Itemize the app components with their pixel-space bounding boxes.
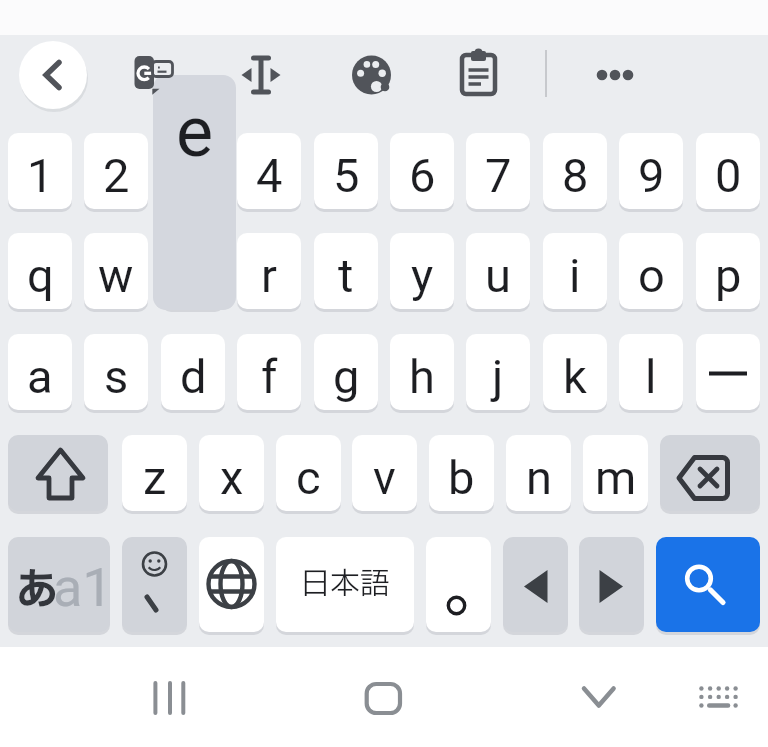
button[interactable]: 4 — [237, 133, 301, 209]
staticText: o — [638, 248, 665, 303]
button[interactable]: n — [506, 435, 571, 511]
staticText: 7 — [485, 148, 512, 203]
staticText: 5 — [333, 148, 360, 203]
staticText: b — [448, 450, 475, 505]
button[interactable]: m — [583, 435, 648, 511]
button[interactable]: 7 — [466, 133, 530, 209]
staticText: 8 — [562, 148, 589, 203]
button[interactable]: q — [8, 233, 72, 309]
staticText: p — [715, 248, 742, 303]
staticText: a — [27, 349, 53, 404]
button[interactable]: 9 — [619, 133, 683, 209]
button[interactable] — [342, 48, 398, 104]
staticText: d — [180, 349, 207, 404]
staticText: 9 — [638, 148, 665, 203]
staticText: j — [492, 349, 504, 404]
button[interactable]: 6 — [390, 133, 454, 209]
button[interactable]: a — [8, 334, 72, 410]
button[interactable]: f — [237, 334, 301, 410]
button[interactable]: v — [352, 435, 417, 511]
button[interactable] — [426, 537, 491, 632]
staticText: k — [563, 349, 587, 404]
button[interactable]: j — [466, 334, 530, 410]
button[interactable] — [586, 47, 642, 103]
staticText: x — [220, 450, 244, 505]
staticText: 6 — [409, 148, 436, 203]
button[interactable]: h — [390, 334, 454, 410]
button[interactable] — [660, 435, 760, 511]
staticText: c — [296, 450, 321, 505]
staticText: e — [176, 91, 214, 173]
staticText: 4 — [256, 148, 283, 203]
staticText: あ — [16, 559, 59, 622]
button[interactable]: あ — [8, 537, 110, 632]
button[interactable]: u — [466, 233, 530, 309]
staticText: 日本語 — [300, 562, 390, 607]
button[interactable]: l — [619, 334, 683, 410]
button[interactable]: w — [84, 233, 148, 309]
staticText: n — [526, 450, 552, 505]
button[interactable]: g — [314, 334, 378, 410]
button[interactable] — [199, 537, 264, 632]
button[interactable] — [579, 537, 644, 632]
staticText: m — [595, 450, 637, 505]
button[interactable]: y — [390, 233, 454, 309]
staticText: q — [27, 248, 54, 303]
staticText: 0 — [715, 148, 742, 203]
button[interactable] — [233, 47, 289, 103]
button[interactable]: z — [122, 435, 187, 511]
button[interactable]: 0 — [696, 133, 760, 209]
button[interactable] — [503, 537, 568, 632]
button[interactable]: t — [314, 233, 378, 309]
button[interactable] — [450, 46, 506, 102]
staticText: f — [261, 349, 278, 404]
staticText: z — [143, 450, 167, 505]
staticText: g — [333, 349, 360, 404]
button[interactable] — [690, 668, 748, 726]
button[interactable]: r — [237, 233, 301, 309]
staticText: r — [261, 248, 277, 303]
staticText: i — [569, 248, 581, 303]
staticText: 3 — [180, 148, 207, 203]
button[interactable] — [696, 334, 760, 410]
button[interactable]: 8 — [543, 133, 607, 209]
button[interactable]: d — [161, 334, 225, 410]
button[interactable] — [355, 670, 411, 726]
button[interactable]: p — [696, 233, 760, 309]
button[interactable] — [120, 47, 176, 103]
button[interactable] — [141, 670, 197, 726]
button[interactable]: 日本語 — [276, 537, 414, 632]
button[interactable]: 5 — [314, 133, 378, 209]
staticText: l — [645, 349, 657, 404]
button[interactable] — [19, 41, 87, 109]
button[interactable]: i — [543, 233, 607, 309]
button[interactable]: 1 — [8, 133, 72, 209]
button[interactable] — [571, 670, 627, 726]
staticText: h — [409, 349, 435, 404]
button[interactable]: 3 — [161, 133, 225, 209]
staticText: s — [104, 349, 129, 404]
staticText: u — [485, 248, 511, 303]
button[interactable]: k — [543, 334, 607, 410]
staticText: 1 — [27, 148, 54, 203]
button[interactable]: c — [276, 435, 341, 511]
staticText: y — [411, 248, 434, 303]
button[interactable]: s — [84, 334, 148, 410]
button[interactable]: x — [199, 435, 264, 511]
button[interactable]: 2 — [84, 133, 148, 209]
staticText: 2 — [103, 148, 130, 203]
staticText: a1 — [53, 556, 110, 619]
button[interactable]: b — [429, 435, 494, 511]
button[interactable] — [122, 537, 187, 632]
staticText: w — [98, 248, 134, 303]
staticText: t — [338, 248, 354, 303]
staticText: v — [373, 450, 396, 505]
button[interactable] — [8, 435, 108, 511]
button[interactable] — [656, 537, 760, 632]
button[interactable]: o — [619, 233, 683, 309]
